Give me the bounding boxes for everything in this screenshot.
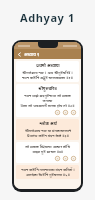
button[interactable]: Share (71, 156, 76, 161)
button[interactable]: Bookmark (55, 110, 60, 115)
staticText: श्रीगणेशाय नमः । अथ श्रीगुरुचरित्र । (22, 70, 73, 75)
staticText: श्लोक अर्थ (39, 121, 57, 127)
staticText: नमन करूनि गणनायका वंदन करितों । (21, 167, 75, 172)
staticText: ग्रंथारंभ करून वंदन केले ॥३॥ (27, 133, 69, 138)
button[interactable]: नमन करूनि गणनायका वंदन करितों । (16, 165, 79, 179)
staticText: शारदेला स्मरुनि गुरुचरणा ॥५॥ (26, 172, 70, 177)
button[interactable]: Play audio (63, 156, 68, 161)
staticText: श्रीगुरुचरित्र (38, 86, 57, 92)
staticText: श्रीगणेशाय नमः या मंगलाचरणाने (25, 128, 71, 133)
staticText: जो सकळ विश्वाचा आधार तोचि (25, 144, 70, 149)
staticText: नमन माझे सदगुरुनाथा जो सकळ जगाचा (19, 93, 76, 103)
staticText: माझा गुरु साचार ॥४॥ (32, 149, 64, 154)
button[interactable]: जो सकळ विश्वाचा आधार तोचि (16, 142, 79, 163)
button[interactable]: श्रीगुरुचरित्र (16, 84, 79, 117)
staticText: नमन करूनि सद्गुरु चरणकमळा ॥१॥ (22, 75, 73, 80)
button[interactable]: श्लोक अर्थ (16, 119, 79, 140)
staticText: अध्याय १ (24, 51, 40, 57)
button[interactable]: Play audio (63, 110, 68, 115)
button[interactable]: प्रथमो अध्यायः (16, 61, 79, 82)
button[interactable]: Back (14, 49, 24, 59)
staticText: त्राता जो भवसागरीं तारक होय तो ॥२॥ (20, 103, 75, 108)
button[interactable]: Share (71, 110, 76, 115)
staticText: प्रथमो अध्यायः (36, 63, 60, 69)
staticText: Adhyay 1 (20, 10, 75, 25)
button[interactable]: Bookmark (55, 156, 60, 161)
